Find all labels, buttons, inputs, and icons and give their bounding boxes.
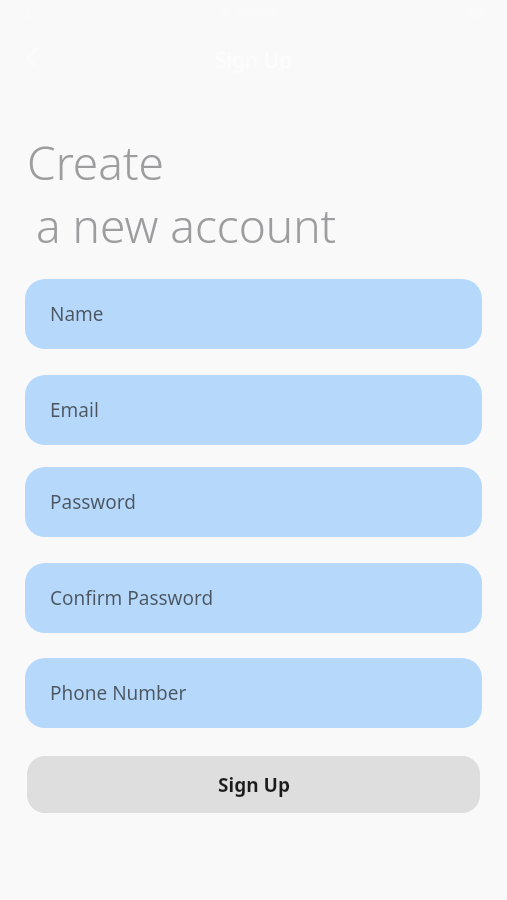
button[interactable]: Name (25, 279, 482, 349)
button[interactable]: Sign Up (27, 756, 480, 813)
staticText: Phone Number (50, 680, 187, 706)
staticText: Create (27, 131, 164, 194)
staticText: Name (50, 301, 104, 327)
staticText: Password (50, 489, 136, 515)
button[interactable]: Confirm Password (25, 563, 482, 633)
staticText: a new account (36, 194, 337, 257)
staticText: Email (50, 397, 99, 423)
staticText: Confirm Password (50, 585, 214, 611)
button[interactable]: Phone Number (25, 658, 482, 728)
staticText: Sign Up (218, 772, 290, 798)
button[interactable]: Email (25, 375, 482, 445)
button[interactable]: Password (25, 467, 482, 537)
